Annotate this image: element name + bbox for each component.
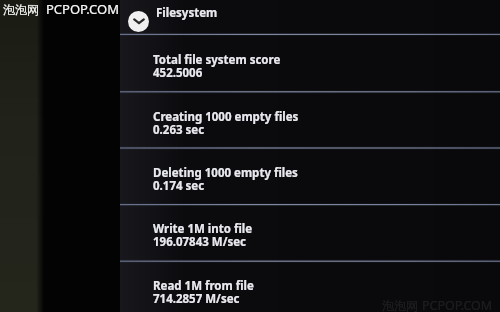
staticText: Read 1M from file 714.2857 M/sec	[153, 280, 254, 306]
staticText: 泡泡网	[382, 298, 418, 312]
button[interactable]: Collapse Filesystem section	[128, 11, 149, 32]
button[interactable]: Filesystem	[150, 2, 226, 24]
button[interactable]: Total file system score 452.5006	[120, 54, 500, 92]
staticText: PCPOP.COM	[422, 297, 493, 312]
staticText: Total file system score 452.5006	[153, 54, 281, 80]
button[interactable]: Creating 1000 empty files 0.263 sec	[120, 111, 500, 149]
staticText: PCPOP.COM	[46, 0, 120, 18]
staticText: Deleting 1000 empty files 0.174 sec	[153, 167, 298, 193]
staticText: Write 1M into file 196.07843 M/sec	[153, 223, 253, 249]
staticText: Filesystem	[156, 5, 218, 21]
staticText: 泡泡网	[3, 2, 39, 17]
staticText: Creating 1000 empty files 0.263 sec	[153, 111, 299, 137]
button[interactable]: Write 1M into file 196.07843 M/sec	[120, 223, 500, 261]
button[interactable]: Read 1M from file 714.2857 M/sec	[120, 280, 500, 312]
button[interactable]: Deleting 1000 empty files 0.174 sec	[120, 167, 500, 205]
